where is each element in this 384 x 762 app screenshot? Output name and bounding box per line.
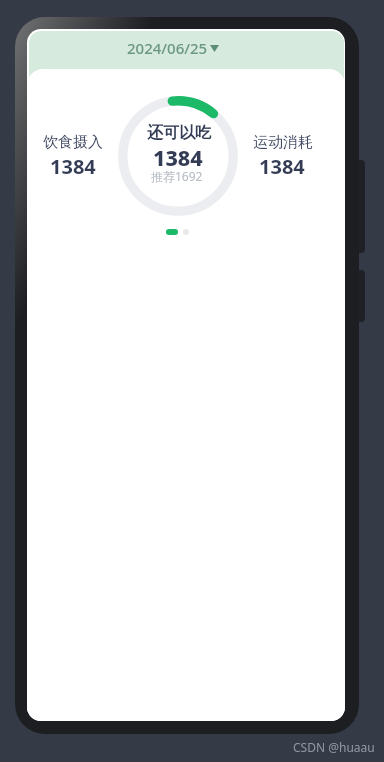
staticText: CSDN @huaau xyxy=(293,739,375,755)
staticText: 2024/06/25 xyxy=(127,38,208,58)
staticText: 运动消耗 xyxy=(253,133,313,152)
staticText: 还可以吃 xyxy=(147,123,211,143)
staticText: 1384 xyxy=(153,143,203,172)
button[interactable] xyxy=(183,229,189,235)
staticText: 1384 xyxy=(259,153,305,180)
button[interactable]: 2024/06/25 xyxy=(127,38,219,58)
staticText: 1384 xyxy=(50,153,96,180)
staticText: 推荐1692 xyxy=(151,168,203,184)
button[interactable] xyxy=(166,229,178,235)
staticText: 饮食摄入 xyxy=(43,133,103,152)
